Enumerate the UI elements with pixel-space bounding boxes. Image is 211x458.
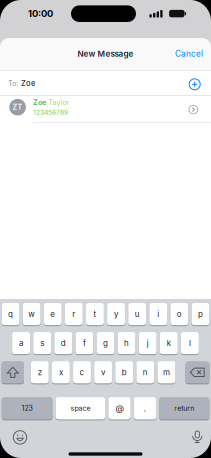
staticText: f xyxy=(83,338,86,348)
button[interactable]: space xyxy=(56,397,105,419)
staticText: Taylor xyxy=(48,98,69,107)
button[interactable]: m xyxy=(157,361,175,383)
staticText: a xyxy=(19,338,23,348)
staticText: k xyxy=(167,338,171,348)
button[interactable]: f xyxy=(75,332,93,354)
button[interactable]: g xyxy=(97,332,114,354)
button[interactable]: a xyxy=(12,332,30,354)
staticText: Zoe xyxy=(21,79,35,88)
staticText: z xyxy=(38,367,42,377)
button[interactable]: ZT xyxy=(0,94,211,121)
button[interactable]: u xyxy=(128,303,146,325)
button[interactable]: Contact Details xyxy=(188,105,198,114)
button[interactable]: c xyxy=(73,361,91,383)
button[interactable]: l xyxy=(181,332,199,354)
staticText: v xyxy=(101,367,105,377)
button[interactable]: e xyxy=(44,303,62,325)
staticText: Zoe xyxy=(33,98,46,107)
button[interactable]: q xyxy=(2,303,19,325)
button[interactable]: n xyxy=(136,361,154,383)
staticText: d xyxy=(61,338,66,348)
button[interactable]: d xyxy=(54,332,72,354)
button[interactable]: 123 xyxy=(2,397,52,419)
button[interactable]: Shift xyxy=(2,361,24,383)
button[interactable]: w xyxy=(23,303,41,325)
staticText: u xyxy=(135,309,140,319)
staticText: x xyxy=(59,367,63,377)
staticText: New Message xyxy=(77,49,133,59)
button[interactable]: b xyxy=(115,361,133,383)
staticText: n xyxy=(143,367,148,377)
button[interactable]: . xyxy=(134,397,156,419)
staticText: c xyxy=(79,367,84,377)
button[interactable]: Dictation xyxy=(191,430,204,443)
staticText: s xyxy=(40,338,44,348)
button[interactable]: z xyxy=(31,361,49,383)
staticText: w xyxy=(28,309,35,319)
button[interactable]: y xyxy=(107,303,125,325)
staticText: space xyxy=(70,404,90,412)
button[interactable]: Cancel xyxy=(175,49,203,59)
button[interactable]: v xyxy=(94,361,112,383)
staticText: t xyxy=(93,309,96,319)
button[interactable]: return xyxy=(159,397,209,419)
button[interactable]: @ xyxy=(108,397,131,419)
staticText: To: xyxy=(8,79,18,88)
staticText: h xyxy=(124,338,129,348)
staticText: r xyxy=(72,309,75,319)
staticText: i xyxy=(157,309,159,319)
staticText: 123456789 xyxy=(33,108,68,116)
button[interactable]: t xyxy=(86,303,104,325)
button[interactable]: Delete xyxy=(186,361,209,383)
button[interactable]: s xyxy=(33,332,51,354)
staticText: j xyxy=(147,338,149,348)
button[interactable]: p xyxy=(191,303,209,325)
staticText: g xyxy=(103,338,108,348)
staticText: return xyxy=(174,404,194,412)
button[interactable]: x xyxy=(52,361,70,383)
staticText: q xyxy=(8,309,13,319)
button[interactable]: Emoji xyxy=(13,430,27,445)
button[interactable]: i xyxy=(149,303,167,325)
button[interactable]: Add Contact xyxy=(188,78,201,90)
staticText: 10:00 xyxy=(28,8,53,19)
staticText: Cancel xyxy=(175,49,203,59)
staticText: l xyxy=(189,338,191,348)
button[interactable]: h xyxy=(118,332,136,354)
staticText: o xyxy=(177,309,182,319)
button[interactable]: k xyxy=(160,332,178,354)
staticText: @ xyxy=(115,403,123,414)
staticText: p xyxy=(198,309,203,319)
staticText: m xyxy=(163,367,170,377)
button[interactable]: To: xyxy=(8,71,174,95)
button[interactable]: r xyxy=(65,303,83,325)
staticText: 123 xyxy=(22,404,33,412)
staticText: b xyxy=(122,367,127,377)
staticText: ZT xyxy=(13,103,23,111)
staticText: . xyxy=(143,403,146,414)
staticText: e xyxy=(50,309,55,319)
staticText: y xyxy=(114,309,118,319)
button[interactable]: o xyxy=(170,303,188,325)
button[interactable]: j xyxy=(139,332,157,354)
